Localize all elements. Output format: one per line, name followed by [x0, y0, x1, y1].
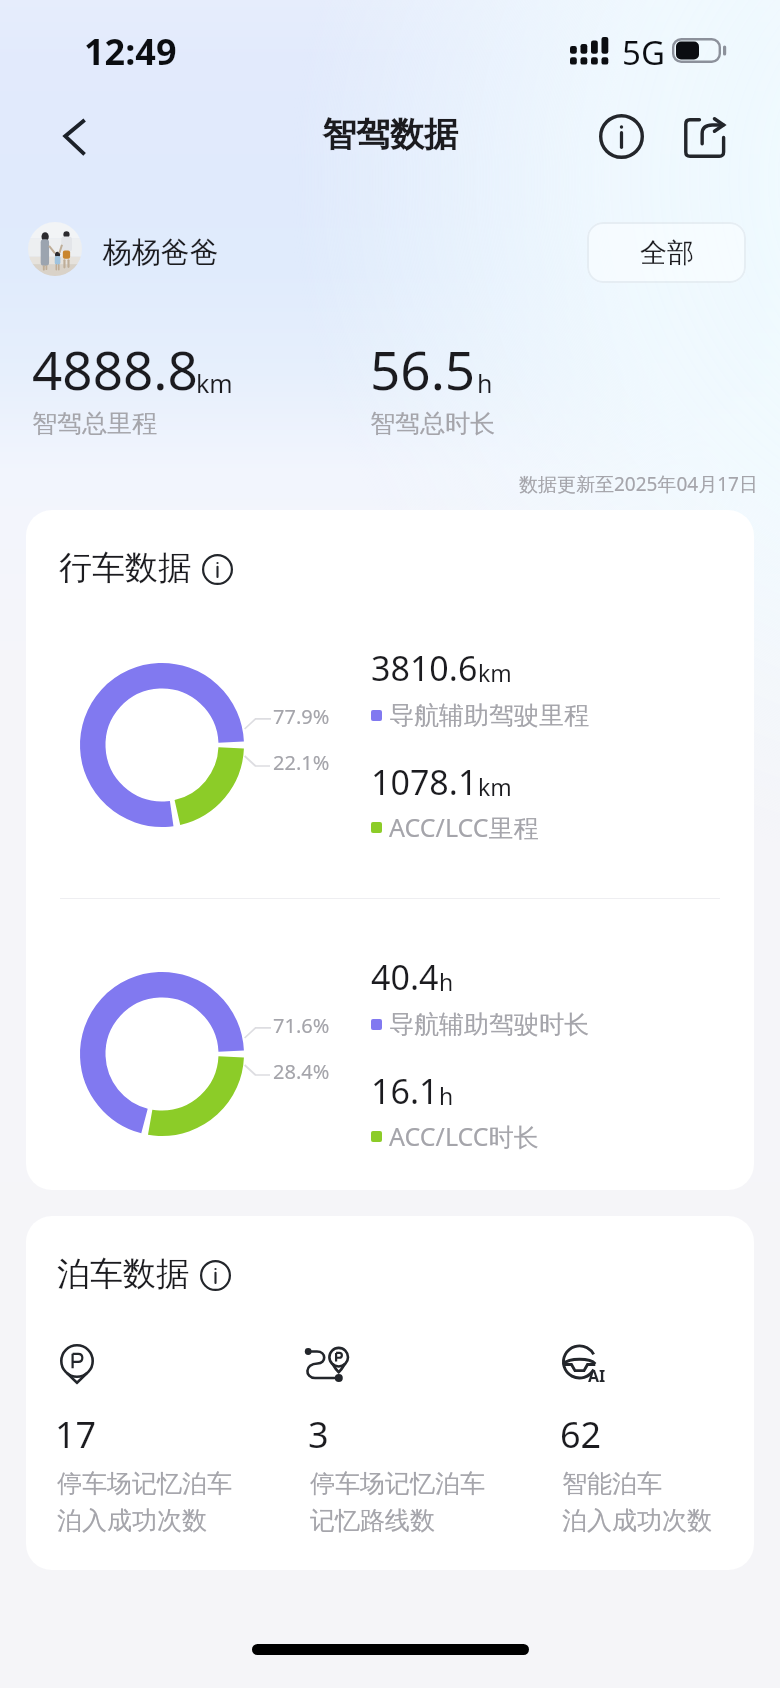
staticText: 22.1% — [273, 749, 330, 776]
staticText: 杨杨爸爸 — [103, 234, 219, 271]
staticText: 停车场记忆泊车 泊入成功次数 — [57, 1468, 232, 1536]
staticText: h — [477, 366, 493, 400]
staticText: 17 — [55, 1410, 97, 1459]
staticText: 数据更新至2025年04月17日 — [519, 471, 758, 497]
button[interactable]: Share — [668, 100, 740, 172]
staticText: 56.5 — [370, 333, 476, 405]
staticText: 全部 — [640, 236, 694, 270]
staticText: 智驾总时长 — [370, 408, 495, 439]
staticText: ACC/LCC时长 — [389, 1119, 539, 1153]
staticText: 40.4 — [371, 954, 439, 1000]
staticText: km — [478, 771, 512, 802]
button[interactable]: Back — [37, 101, 109, 173]
staticText: 导航辅助驾驶里程 — [389, 700, 589, 731]
staticText: h — [439, 966, 454, 997]
staticText: 3810.6 — [371, 645, 478, 691]
staticText: 停车场记忆泊车 记忆路线数 — [310, 1468, 485, 1536]
button[interactable]: Info — [585, 100, 657, 172]
staticText: 16.1 — [371, 1068, 439, 1114]
staticText: 3 — [308, 1410, 329, 1459]
staticText: 5G — [622, 30, 665, 75]
button[interactable]: 行车数据 — [59, 547, 233, 589]
staticText: 1078.1 — [371, 759, 478, 805]
button[interactable]: 全部 — [587, 222, 746, 283]
button[interactable]: 杨杨爸爸 — [28, 218, 144, 272]
staticText: 泊车数据 — [57, 1253, 189, 1295]
staticText: 71.6% — [273, 1012, 330, 1039]
staticText: 62 — [560, 1410, 602, 1459]
staticText: km — [196, 366, 233, 400]
staticText: 导航辅助驾驶时长 — [389, 1009, 589, 1040]
staticText: 行车数据 — [59, 547, 191, 589]
staticText: 智驾数据 — [322, 113, 458, 156]
staticText: 智驾总里程 — [32, 408, 157, 439]
staticText: 智能泊车 泊入成功次数 — [562, 1468, 712, 1536]
staticText: h — [439, 1080, 454, 1111]
button[interactable]: 泊车数据 — [57, 1253, 231, 1295]
staticText: AI — [588, 1365, 606, 1387]
staticText: ACC/LCC里程 — [389, 810, 539, 844]
staticText: 4888.8 — [32, 333, 198, 405]
staticText: 77.9% — [273, 703, 330, 730]
staticText: 28.4% — [273, 1058, 330, 1085]
staticText: 12:49 — [84, 27, 177, 76]
staticText: km — [478, 657, 512, 688]
